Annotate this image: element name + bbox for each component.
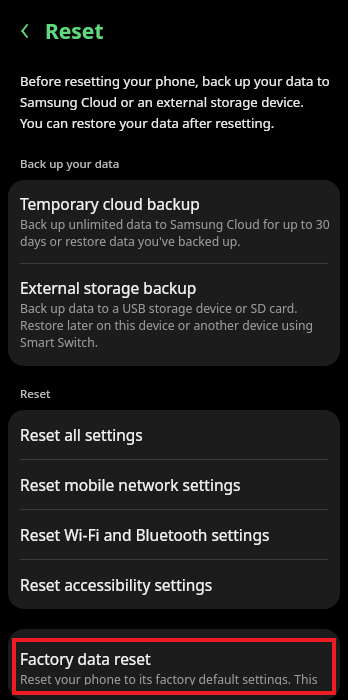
staticText: Reset xyxy=(45,17,104,46)
staticText: Factory data reset xyxy=(20,648,151,669)
staticText: Reset your phone to its factory default … xyxy=(20,671,328,685)
staticText: Reset Wi-Fi and Bluetooth settings xyxy=(20,524,270,545)
staticText: Reset accessibility settings xyxy=(20,574,213,595)
staticText: Before resetting your phone, back up you… xyxy=(20,72,330,132)
staticText: Reset xyxy=(20,386,51,402)
staticText: External storage backup xyxy=(20,277,197,298)
button[interactable]: Reset all settings xyxy=(8,410,340,459)
button[interactable]: Back xyxy=(12,18,38,44)
staticText: Back up your data xyxy=(20,156,120,172)
button[interactable]: External storage backup xyxy=(8,264,340,366)
button[interactable]: Reset Wi-Fi and Bluetooth settings xyxy=(8,510,340,559)
button[interactable]: Factory data reset xyxy=(12,638,336,695)
staticText: Back up data to a USB storage device or … xyxy=(20,300,330,351)
staticText: Reset all settings xyxy=(20,424,143,445)
button[interactable]: Reset accessibility settings xyxy=(8,560,340,609)
staticText: Reset mobile network settings xyxy=(20,474,241,495)
button[interactable]: Reset mobile network settings xyxy=(8,460,340,509)
button[interactable]: Temporary cloud backup xyxy=(8,180,340,263)
staticText: Temporary cloud backup xyxy=(20,193,200,214)
staticText: Back up unlimited data to Samsung Cloud … xyxy=(20,216,330,250)
